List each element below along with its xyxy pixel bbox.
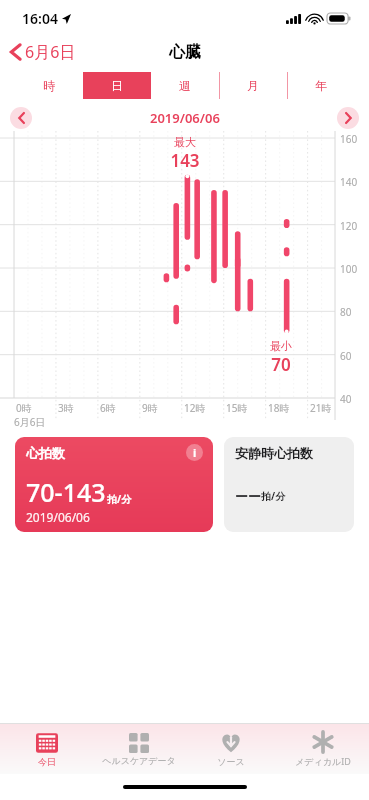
button[interactable]: 時 bbox=[14, 72, 83, 99]
staticText: 年 bbox=[315, 78, 327, 93]
staticText: 12時 bbox=[184, 401, 206, 415]
button[interactable]: ヘルスケアデータ bbox=[93, 724, 185, 774]
staticText: 15時 bbox=[226, 401, 248, 415]
staticText: 拍/分 bbox=[261, 489, 286, 503]
staticText: 143 bbox=[170, 149, 200, 172]
staticText: メディカルID bbox=[295, 755, 351, 767]
staticText: 60 bbox=[340, 349, 352, 363]
button[interactable]: Previous day bbox=[10, 107, 32, 129]
button[interactable]: 週 bbox=[151, 72, 219, 99]
staticText: 9時 bbox=[142, 401, 158, 415]
staticText: 18時 bbox=[268, 401, 290, 415]
staticText: ヘルスケアデータ bbox=[102, 755, 176, 766]
staticText: 安静時心拍数 bbox=[235, 445, 313, 461]
staticText: 心拍数 bbox=[26, 445, 65, 461]
button[interactable]: Next day bbox=[337, 107, 359, 129]
staticText: 40 bbox=[340, 392, 352, 406]
staticText: 70-143 bbox=[26, 475, 106, 509]
staticText: 2019/06/06 bbox=[26, 509, 90, 525]
staticText: 70 bbox=[271, 353, 291, 376]
button[interactable]: ソース bbox=[185, 724, 277, 774]
staticText: 時 bbox=[43, 78, 55, 93]
staticText: 21時 bbox=[310, 401, 332, 415]
staticText: 140 bbox=[340, 175, 358, 189]
staticText: 6月6日 bbox=[25, 41, 76, 63]
button[interactable]: 今日 bbox=[0, 724, 93, 774]
button[interactable]: 安静時心拍数 bbox=[224, 437, 354, 532]
staticText: 2019/06/06 bbox=[150, 109, 220, 127]
button[interactable]: 日 bbox=[83, 72, 151, 99]
staticText: ーー bbox=[235, 488, 261, 504]
staticText: 日 bbox=[111, 78, 123, 93]
staticText: 拍/分 bbox=[107, 492, 132, 506]
staticText: 3時 bbox=[58, 401, 74, 415]
staticText: 最小 bbox=[270, 339, 292, 353]
staticText: 16:04 bbox=[22, 9, 58, 28]
staticText: 160 bbox=[340, 132, 358, 146]
staticText: 週 bbox=[179, 78, 191, 93]
staticText: 月 bbox=[247, 78, 259, 93]
staticText: 120 bbox=[340, 219, 358, 233]
staticText: 心臓 bbox=[169, 42, 201, 62]
staticText: 6時 bbox=[100, 401, 116, 415]
staticText: 最大 bbox=[174, 135, 196, 149]
staticText: 100 bbox=[340, 262, 358, 276]
staticText: 6月6日 bbox=[14, 415, 46, 429]
button[interactable]: 年 bbox=[287, 72, 355, 99]
staticText: 今日 bbox=[38, 756, 56, 767]
staticText: 0時 bbox=[16, 401, 32, 415]
staticText: ソース bbox=[217, 756, 245, 767]
staticText: i bbox=[193, 445, 197, 460]
button[interactable]: 6月6日 bbox=[0, 37, 84, 67]
staticText: 80 bbox=[340, 305, 352, 319]
button[interactable]: メディカルID bbox=[277, 724, 369, 774]
button[interactable]: 心拍数 bbox=[15, 437, 213, 532]
button[interactable]: 月 bbox=[219, 72, 287, 99]
